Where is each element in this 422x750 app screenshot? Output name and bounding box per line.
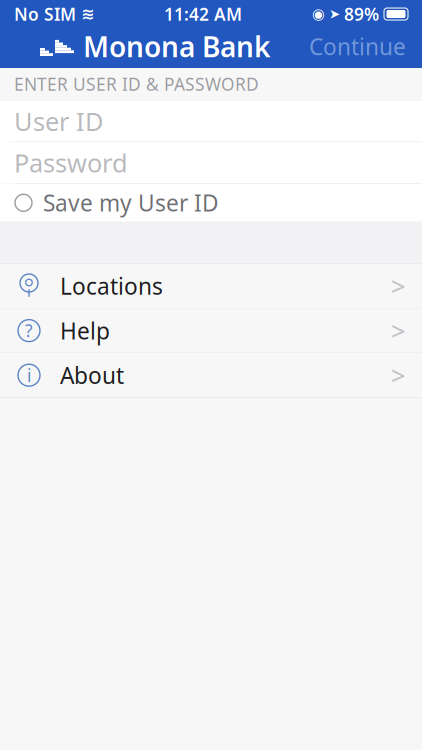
staticText: Help bbox=[60, 315, 110, 346]
button[interactable]: Continue bbox=[309, 23, 422, 69]
button[interactable]: ? bbox=[0, 309, 422, 353]
staticText: ◉ bbox=[312, 6, 325, 22]
staticText: Password bbox=[14, 146, 128, 179]
button[interactable]: Password bbox=[0, 142, 422, 183]
staticText: > bbox=[391, 269, 405, 303]
staticText: 89% bbox=[344, 2, 379, 25]
button[interactable]: Save my User ID bbox=[0, 184, 422, 222]
staticText: ➤ bbox=[329, 6, 340, 21]
staticText: About bbox=[60, 360, 124, 390]
staticText: Locations bbox=[60, 271, 163, 301]
staticText: > bbox=[391, 358, 405, 392]
button[interactable]: User ID bbox=[0, 101, 422, 142]
staticText: Save my User ID bbox=[43, 188, 219, 218]
staticText: ? bbox=[25, 319, 33, 342]
staticText: Monona Bank bbox=[83, 28, 270, 65]
staticText: ENTER USER ID & PASSWORD bbox=[14, 72, 259, 95]
button[interactable]: Locations bbox=[0, 264, 422, 309]
staticText: User ID bbox=[14, 104, 103, 138]
staticText: > bbox=[391, 314, 405, 347]
staticText: i bbox=[27, 364, 31, 387]
staticText: No SIM bbox=[14, 2, 76, 25]
button[interactable]: i bbox=[0, 353, 422, 398]
staticText: Continue bbox=[309, 31, 406, 61]
staticText: ≋ bbox=[81, 5, 94, 23]
staticText: 11:42 AM bbox=[164, 2, 242, 25]
